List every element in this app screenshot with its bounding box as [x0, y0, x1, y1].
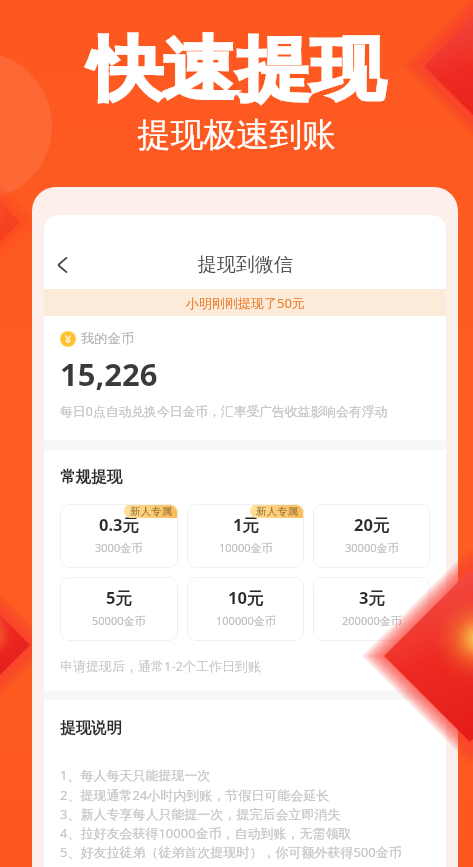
staticText: 10元 [228, 586, 264, 609]
staticText: 新人专属 [256, 505, 298, 518]
staticText: 5元 [106, 586, 132, 609]
staticText: 小明刚刚提现了50元 [186, 294, 305, 312]
staticText: 提现极速到账 [0, 114, 473, 156]
staticText: 10000金币 [219, 540, 273, 555]
staticText: 提现说明 [60, 718, 122, 738]
staticText: 50000金币 [92, 613, 146, 628]
staticText: 20元 [354, 513, 390, 536]
staticText: 3000金币 [95, 540, 143, 555]
button[interactable]: 返回 [44, 246, 82, 284]
button[interactable]: 20元 [313, 504, 430, 568]
staticText: 新人专属 [130, 505, 172, 518]
button[interactable]: 3元 [313, 577, 430, 641]
staticText: 200000金币 [342, 613, 402, 628]
staticText: 提现到微信 [198, 253, 293, 277]
staticText: 1、每人每天只能提现一次 2、提现通常24小时内到账，节假日可能会延长 3、新人… [60, 766, 402, 860]
staticText: 100000金币 [216, 613, 276, 628]
staticText: 每日0点自动兑换今日金币，汇率受广告收益影响会有浮动 [60, 402, 388, 419]
staticText: 15,226 [60, 353, 158, 395]
staticText: 1元 [233, 513, 259, 536]
staticText: 30000金币 [345, 540, 399, 555]
staticText: 我的金币 [81, 330, 135, 347]
staticText: 快速提现 [0, 27, 473, 114]
staticText: 常规提现 [60, 467, 122, 487]
staticText: 0.3元 [99, 513, 140, 536]
staticText: 申请提现后，通常1-2个工作日到账 [60, 657, 262, 675]
button[interactable]: 0.3元 [60, 504, 178, 568]
staticText: 3元 [359, 586, 385, 609]
button[interactable]: 10元 [187, 577, 304, 641]
button[interactable]: 1元 [187, 504, 304, 568]
button[interactable]: 5元 [60, 577, 178, 641]
